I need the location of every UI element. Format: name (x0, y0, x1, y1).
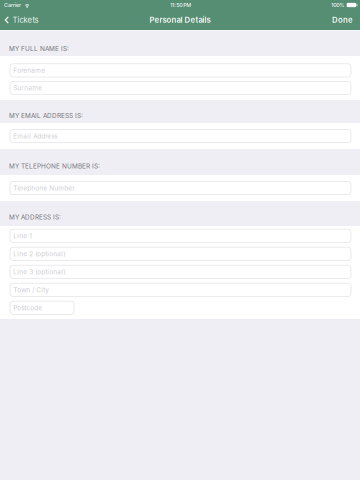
staticText: Personal Details (149, 15, 210, 25)
staticText: 11:50 PM (170, 2, 191, 8)
staticText: Done (332, 15, 353, 25)
button[interactable]: Done (325, 10, 360, 30)
staticText: Carrier (4, 2, 21, 8)
staticText: Tickets (12, 15, 38, 25)
staticText: Surname (13, 84, 42, 92)
staticText: Line 1 (13, 232, 32, 240)
staticText: Line 2 (optional) (13, 250, 65, 258)
staticText: 100% (331, 2, 344, 8)
button[interactable]: Email Address (10, 129, 351, 143)
button[interactable]: Line 2 (optional) (10, 247, 351, 260)
button[interactable]: Forename (10, 64, 351, 77)
staticText: Line 3 (optional) (13, 268, 65, 276)
staticText: Email Address (13, 132, 57, 140)
button[interactable]: Line 3 (optional) (10, 265, 351, 278)
button[interactable]: Town / City (10, 283, 351, 296)
button[interactable]: Telephone Number (10, 181, 351, 195)
staticText: MY TELEPHONE NUMBER IS: (9, 162, 100, 170)
button[interactable]: Line 1 (10, 229, 351, 242)
button[interactable]: Tickets (0, 10, 43, 30)
staticText: Town / City (13, 286, 49, 294)
staticText: Telephone Number (13, 184, 74, 192)
button[interactable]: Postcode (10, 301, 74, 314)
staticText: Postcode (13, 304, 42, 312)
button[interactable]: Surname (10, 81, 351, 95)
staticText: MY EMAIL ADDRESS IS: (9, 112, 83, 119)
staticText: MY FULL NAME IS: (9, 45, 69, 52)
staticText: MY ADDRESS IS: (9, 213, 61, 221)
staticText: Forename (13, 66, 45, 74)
